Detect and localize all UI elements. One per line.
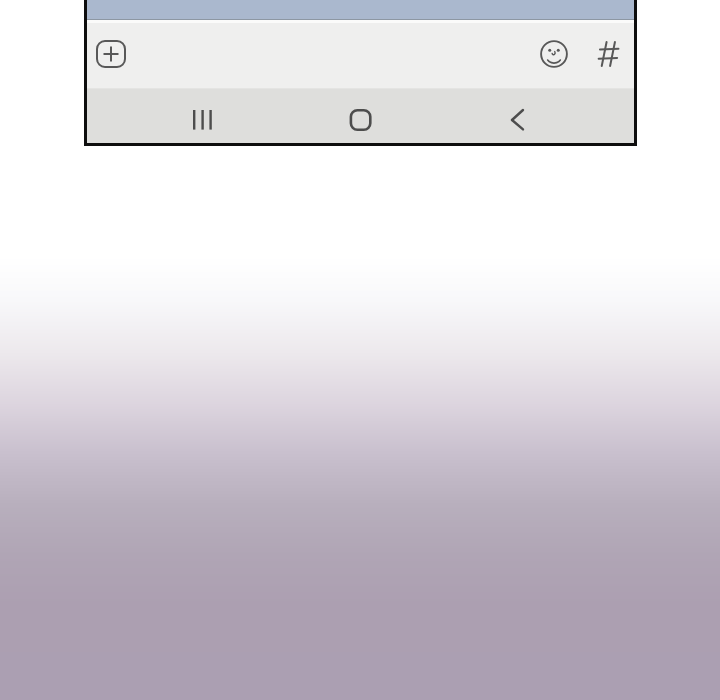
button[interactable]: Add attachment [96, 40, 126, 68]
button[interactable]: Emoji [540, 40, 568, 68]
button[interactable]: Hashtag [598, 41, 620, 67]
button[interactable]: Home [322, 88, 382, 143]
button[interactable]: Back [479, 88, 539, 143]
button[interactable]: Recents [163, 88, 223, 143]
